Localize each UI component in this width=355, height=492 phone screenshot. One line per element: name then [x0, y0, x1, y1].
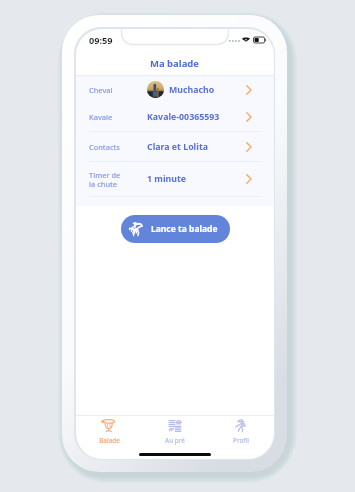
staticText: Cheval	[89, 85, 147, 95]
button[interactable]: Timer de la chute	[76, 162, 274, 196]
staticText: Ma balade	[150, 57, 200, 70]
staticText: Profil	[233, 436, 249, 445]
staticText: Balade	[99, 436, 120, 445]
staticText: Timer de la chute	[89, 170, 147, 189]
staticText: 1 minute	[147, 173, 187, 185]
staticText: Clara et Lolita	[147, 141, 208, 153]
staticText: Kavale-00365593	[147, 111, 220, 123]
button[interactable]: Lance ta balade	[121, 215, 230, 243]
button[interactable]: Balade	[76, 417, 142, 445]
button[interactable]: Cheval	[76, 76, 274, 103]
button[interactable]: Contacts	[76, 132, 274, 161]
button[interactable]: Profil	[208, 417, 274, 445]
staticText: Lance ta balade	[151, 223, 218, 235]
button[interactable]: Au pré	[142, 417, 208, 445]
staticText: Kavale	[89, 112, 147, 122]
button[interactable]: Kavale	[76, 103, 274, 131]
staticText: 09:59	[89, 34, 113, 47]
staticText: Muchacho	[169, 84, 215, 96]
staticText: Au pré	[165, 436, 185, 445]
staticText: Contacts	[89, 142, 147, 152]
